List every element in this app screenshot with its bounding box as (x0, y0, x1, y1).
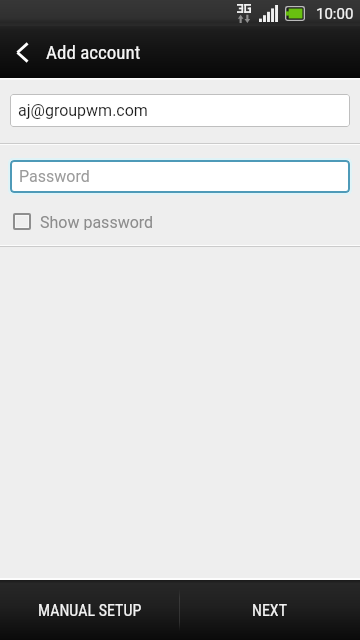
staticText: Show password (40, 213, 154, 230)
staticText: NEXT (252, 601, 288, 620)
staticText: Password (19, 167, 90, 186)
staticText: MANUAL SETUP (38, 601, 142, 620)
button[interactable]: MANUAL SETUP (0, 580, 179, 640)
button[interactable]: Show password (0, 213, 360, 230)
staticText: 10:00 (316, 5, 354, 23)
button[interactable]: Password (10, 160, 350, 193)
button[interactable]: NEXT (180, 580, 360, 640)
button[interactable]: aj@groupwm.com (10, 94, 350, 127)
staticText: aj@groupwm.com (18, 101, 148, 120)
button[interactable]: Back (0, 26, 44, 78)
staticText: Add account (46, 41, 141, 63)
